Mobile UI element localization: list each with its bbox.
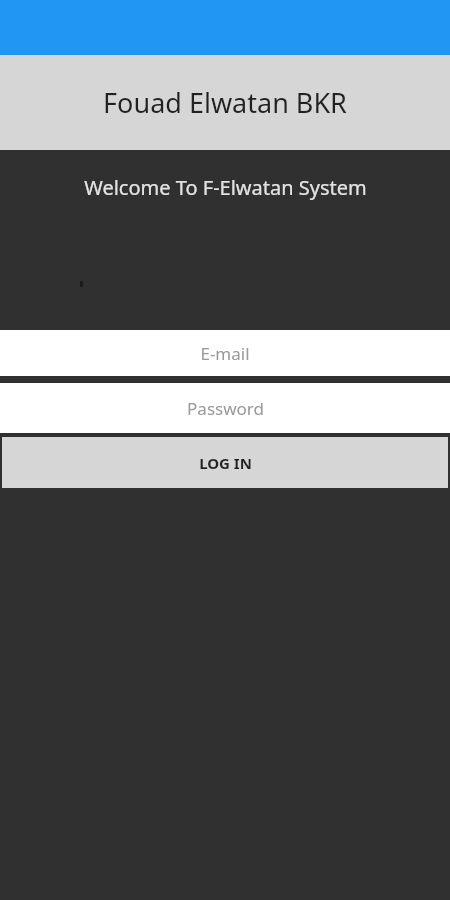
staticText: E-mail (200, 342, 250, 365)
button[interactable]: Password (0, 383, 450, 433)
staticText: Welcome To F-Elwatan System (84, 174, 367, 201)
button[interactable]: LOG IN (2, 437, 448, 488)
staticText: LOG IN (199, 453, 252, 473)
staticText: Password (187, 397, 264, 420)
staticText: Fouad Elwatan BKR (103, 84, 347, 121)
button[interactable]: E-mail (0, 330, 450, 376)
